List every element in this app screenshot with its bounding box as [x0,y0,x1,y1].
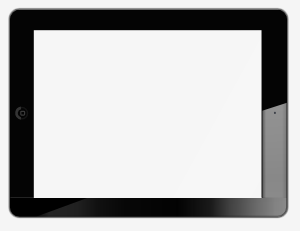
button[interactable]: Home [14,105,30,121]
